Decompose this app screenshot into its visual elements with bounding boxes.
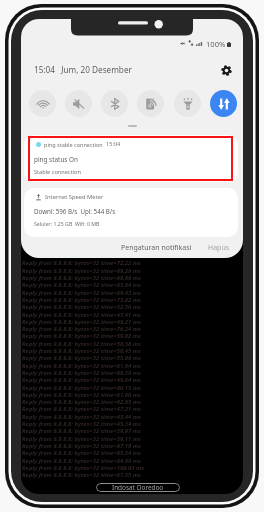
staticText: Reply from 8.8.8.8: bytes=32 time=68,86 …: [22, 274, 141, 282]
button[interactable]: Settings: [218, 62, 234, 78]
staticText: Downl: 596 B/s Upl: 544 B/s: [34, 207, 116, 215]
staticText: Reply from 8.8.8.8: bytes=32 time=58,38 …: [22, 340, 141, 348]
staticText: Reply from 8.8.8.8: bytes=32 time=45,34 …: [22, 420, 141, 428]
staticText: ping status On: [34, 155, 78, 164]
staticText: Pengaturan notifikasi: [121, 243, 192, 253]
staticText: Reply from 8.8.8.8: bytes=32 time=87,19 …: [22, 442, 141, 450]
staticText: Reply from 8.8.8.8: bytes=32 time=61,55 …: [22, 471, 141, 479]
staticText: Reply from 8.8.8.8: bytes=32 time=50,45 …: [22, 347, 141, 355]
button[interactable]: Pengaturan notifikasi: [120, 241, 193, 255]
staticText: Reply from 8.8.8.8: bytes=32 time=49,21 …: [22, 318, 141, 326]
button[interactable]: Hapus: [207, 241, 231, 255]
staticText: Reply from 8.8.8.8: bytes=32 time=47,41 …: [22, 311, 141, 319]
button[interactable]: Flashlight: [174, 90, 201, 117]
staticText: Reply from 8.8.8.8: bytes=32 time=72,22 …: [22, 259, 141, 267]
button[interactable]: Internet Speed Meter: [24, 188, 238, 237]
button[interactable]: Wi-Fi: [29, 90, 56, 117]
staticText: Reply from 8.8.8.8: bytes=32 time=55,06 …: [22, 354, 141, 362]
button[interactable]: ping stable connection: [24, 135, 238, 182]
staticText: Stable connection: [34, 168, 81, 176]
staticText: Reply from 8.8.8.8: bytes=32 time=59,97 …: [22, 427, 141, 435]
staticText: Reply from 8.8.8.8: bytes=32 time=80,15 …: [22, 384, 141, 392]
staticText: Seluler: 1,25 GB Wifi: 0 MB: [34, 220, 100, 227]
button[interactable]: Screen cast: [137, 90, 164, 117]
staticText: Reply from 8.8.8.8: bytes=32 time=49,64 …: [22, 376, 141, 384]
button[interactable]: Mobile data: [210, 90, 237, 117]
button[interactable]: Bluetooth: [101, 90, 128, 117]
staticText: Internet Speed Meter: [45, 193, 104, 201]
staticText: Reply from 8.8.8.8: bytes=32 time=84,89 …: [22, 457, 141, 465]
staticText: Reply from 8.8.8.8: bytes=32 time=47,21 …: [22, 405, 141, 413]
button[interactable]: Silent: [65, 90, 92, 117]
staticText: Reply from 8.8.8.8: bytes=32 time=52,56 …: [22, 303, 141, 311]
staticText: Reply from 8.8.8.8: bytes=32 time=59,82 …: [22, 332, 141, 340]
staticText: Reply from 8.8.8.8: bytes=32 time=95,54 …: [22, 449, 141, 457]
staticText: Reply from 8.8.8.8: bytes=32 time=85,94 …: [22, 281, 141, 289]
staticText: Reply from 8.8.8.8: bytes=32 time=69,43 …: [22, 289, 141, 297]
staticText: Reply from 8.8.8.8: bytes=32 time=45,44 …: [22, 413, 141, 421]
staticText: Reply from 8.8.8.8: bytes=32 time=89,28 …: [22, 267, 141, 275]
staticText: Reply from 8.8.8.8: bytes=32 time=62,95 …: [22, 398, 141, 406]
staticText: Reply from 8.8.8.8: bytes=32 time=59,11 …: [22, 435, 141, 443]
staticText: 15:04: [106, 140, 121, 148]
staticText: Reply from 8.8.8.8: bytes=32 time=188,03…: [22, 464, 145, 472]
staticText: Reply from 8.8.8.8: bytes=32 time=76,24 …: [22, 325, 141, 333]
staticText: Indosat Ooredoo: [112, 483, 164, 492]
staticText: Reply from 8.8.8.8: bytes=32 time=61,80 …: [22, 391, 141, 399]
staticText: Reply from 8.8.8.8: bytes=32 time=73,82 …: [22, 296, 141, 304]
staticText: 100%: [206, 39, 226, 49]
staticText: Reply from 8.8.8.8: bytes=32 time=61,94 …: [22, 362, 141, 370]
staticText: Hapus: [208, 243, 230, 253]
staticText: 15:04 Jum, 20 Desember: [34, 64, 132, 75]
staticText: Reply from 8.8.8.8: bytes=32 time=99,59 …: [22, 369, 141, 377]
staticText: ping stable connection: [44, 141, 103, 148]
